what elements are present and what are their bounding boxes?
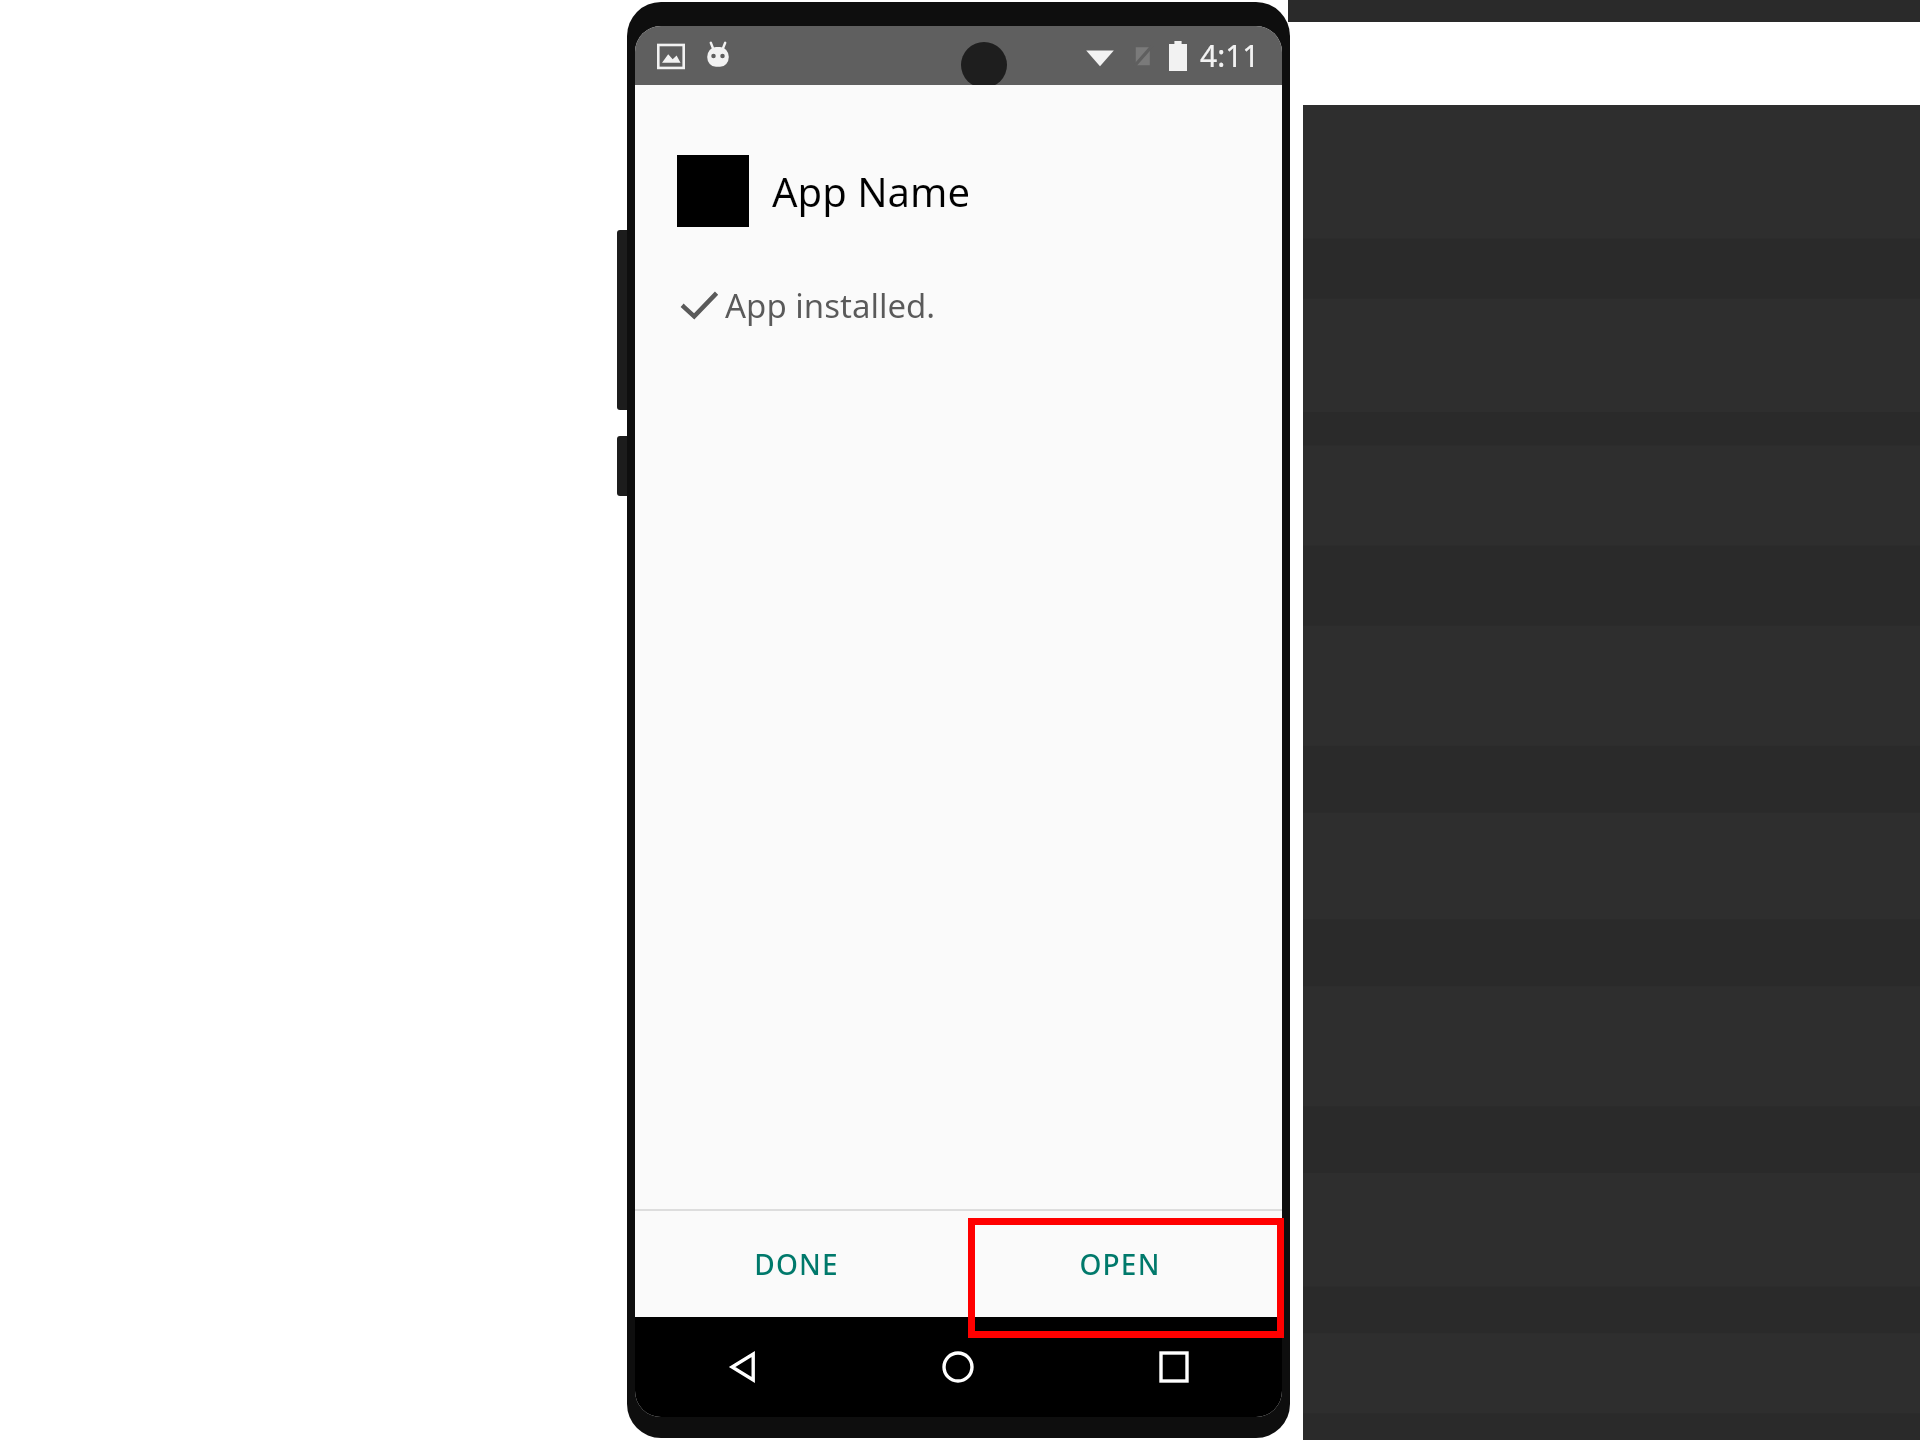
staticText: 4:11	[1200, 35, 1260, 76]
button[interactable]: Home	[850, 1317, 1066, 1417]
button[interactable]: DONE	[635, 1211, 958, 1317]
staticText: App Name	[772, 164, 970, 218]
staticText: App installed.	[725, 283, 936, 328]
button[interactable]: OPEN	[958, 1211, 1282, 1317]
button[interactable]: Recent apps	[1066, 1317, 1282, 1417]
button[interactable]: Back	[635, 1317, 850, 1417]
staticText: DONE	[754, 1245, 839, 1283]
staticText: OPEN	[1079, 1245, 1161, 1283]
